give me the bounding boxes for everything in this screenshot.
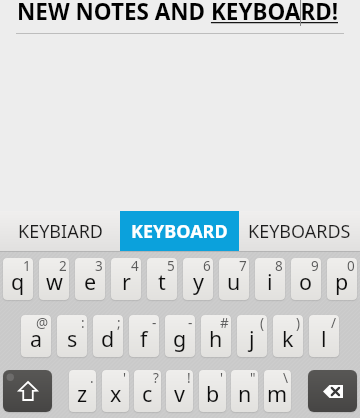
staticText: ! xyxy=(187,370,191,387)
staticText: ' xyxy=(220,370,224,387)
staticText: - xyxy=(152,315,157,332)
button[interactable]: ( xyxy=(237,315,267,357)
button[interactable]: 8 xyxy=(255,258,285,300)
button[interactable]: KEYBIARD xyxy=(0,211,120,251)
staticText: 7 xyxy=(239,258,247,275)
staticText: \ xyxy=(283,370,289,387)
button[interactable]: / xyxy=(309,315,339,357)
staticText: ) xyxy=(296,315,301,332)
staticText: KEYBOARD xyxy=(131,219,228,244)
staticText: m xyxy=(267,379,288,408)
button[interactable]: ' xyxy=(102,370,129,412)
staticText: l xyxy=(321,324,327,353)
button[interactable]: - xyxy=(165,315,195,357)
staticText: : xyxy=(81,315,85,332)
button[interactable]: 3 xyxy=(75,258,105,300)
staticText: j xyxy=(249,324,255,353)
button[interactable]: " xyxy=(231,370,258,412)
staticText: v xyxy=(174,379,185,408)
staticText: - xyxy=(188,315,193,332)
button[interactable]: \ xyxy=(264,370,291,412)
button[interactable]: . xyxy=(69,370,96,412)
button[interactable]: # xyxy=(201,315,231,357)
staticText: ? xyxy=(153,370,159,387)
button[interactable]: - xyxy=(129,315,159,357)
button[interactable]: @ xyxy=(21,315,51,357)
button[interactable]: 2 xyxy=(39,258,69,300)
staticText: d xyxy=(101,324,115,353)
staticText: e xyxy=(84,267,97,296)
button[interactable]: Backspace xyxy=(308,370,357,412)
button[interactable]: ' xyxy=(199,370,226,412)
button[interactable]: 4 xyxy=(111,258,141,300)
staticText: q xyxy=(11,267,25,296)
button[interactable]: 5 xyxy=(147,258,177,300)
staticText: n xyxy=(238,379,252,408)
button[interactable]: 0 xyxy=(327,258,357,300)
staticText: / xyxy=(331,315,337,332)
staticText: a xyxy=(30,324,43,353)
button[interactable]: ) xyxy=(273,315,303,357)
staticText: f xyxy=(140,324,148,353)
button[interactable]: 9 xyxy=(291,258,321,300)
staticText: @ xyxy=(36,315,49,332)
staticText: p xyxy=(335,267,349,296)
staticText: ; xyxy=(117,315,121,332)
staticText: 6 xyxy=(203,258,211,275)
staticText: ( xyxy=(260,315,265,332)
staticText: g xyxy=(173,324,187,353)
staticText: KEYBOARDS xyxy=(248,219,351,244)
staticText: c xyxy=(142,379,153,408)
staticText: NEW NOTES AND KEYBOARD! xyxy=(17,0,339,27)
button[interactable]: KEYBOARDS xyxy=(239,211,360,251)
staticText: w xyxy=(46,267,63,296)
staticText: " xyxy=(250,370,256,387)
staticText: 8 xyxy=(275,258,283,275)
staticText: KEYBIARD xyxy=(18,219,103,244)
staticText: h xyxy=(209,324,223,353)
staticText: ' xyxy=(123,370,127,387)
staticText: 9 xyxy=(311,258,319,275)
staticText: k xyxy=(282,324,294,353)
staticText: t xyxy=(158,267,166,296)
staticText: s xyxy=(67,324,78,353)
button[interactable]: ! xyxy=(166,370,193,412)
staticText: 4 xyxy=(131,258,139,275)
button[interactable]: : xyxy=(57,315,87,357)
button[interactable]: Shift xyxy=(3,370,52,412)
staticText: 0 xyxy=(347,258,355,275)
staticText: 3 xyxy=(95,258,103,275)
button[interactable]: ; xyxy=(93,315,123,357)
button[interactable]: 1 xyxy=(3,258,33,300)
button[interactable]: ? xyxy=(134,370,161,412)
staticText: x xyxy=(110,379,122,408)
staticText: i xyxy=(267,267,273,296)
staticText: z xyxy=(77,379,88,408)
staticText: o xyxy=(299,267,313,296)
button[interactable]: 7 xyxy=(219,258,249,300)
staticText: . xyxy=(90,370,94,387)
staticText: b xyxy=(206,379,220,408)
staticText: u xyxy=(227,267,241,296)
staticText: r xyxy=(122,267,131,296)
staticText: 1 xyxy=(23,258,31,275)
button[interactable]: 6 xyxy=(183,258,213,300)
staticText: # xyxy=(220,315,229,332)
staticText: y xyxy=(193,267,204,296)
button[interactable]: KEYBOARD xyxy=(120,211,239,251)
staticText: 5 xyxy=(167,258,175,275)
staticText: 2 xyxy=(59,258,67,275)
